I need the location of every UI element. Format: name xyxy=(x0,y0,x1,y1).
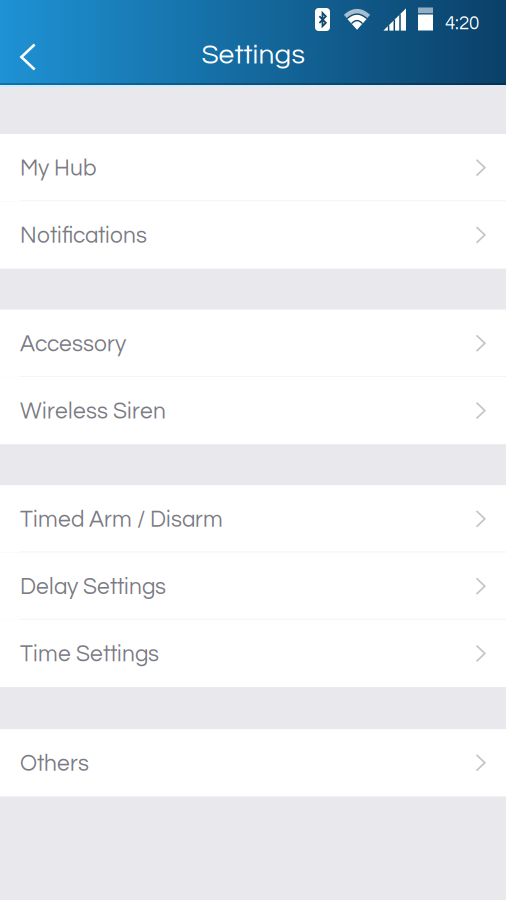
button[interactable]: My Hub xyxy=(0,134,506,201)
staticText: Wireless Siren xyxy=(20,400,166,423)
staticText: 4:20 xyxy=(445,14,479,33)
staticText: Accessory xyxy=(20,333,126,356)
button[interactable]: Time Settings xyxy=(0,620,506,687)
staticText: Delay Settings xyxy=(20,575,166,599)
staticText: Timed Arm / Disarm xyxy=(20,508,223,531)
button[interactable]: Accessory xyxy=(0,310,506,377)
staticText: Notifications xyxy=(20,224,147,248)
button[interactable]: Back xyxy=(1,30,55,84)
button[interactable]: Delay Settings xyxy=(0,552,506,620)
staticText: Time Settings xyxy=(20,643,159,666)
button[interactable]: Others xyxy=(0,729,506,796)
button[interactable]: Timed Arm / Disarm xyxy=(0,485,506,552)
button[interactable]: Wireless Siren xyxy=(0,377,506,444)
staticText: Settings xyxy=(201,41,304,69)
staticText: Others xyxy=(20,752,89,775)
button[interactable]: Notifications xyxy=(0,201,506,269)
staticText: My Hub xyxy=(20,157,96,180)
